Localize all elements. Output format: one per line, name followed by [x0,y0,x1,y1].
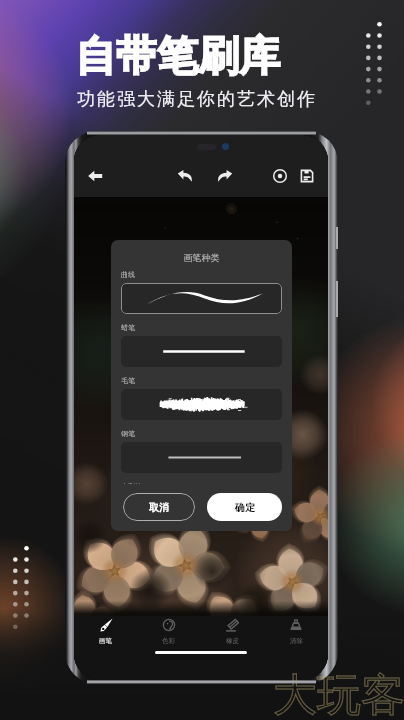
button[interactable]: 色彩 [137,616,200,647]
staticText: 钢笔 [121,429,135,438]
button[interactable]: Redo [213,164,237,188]
staticText: 橡皮 [226,637,239,645]
staticText: 毛笔 [121,376,135,385]
button[interactable] [121,336,282,367]
button[interactable] [121,389,282,420]
button[interactable]: 确定 [207,493,282,521]
button[interactable]: 清除 [264,616,328,647]
staticText: 画笔 [99,637,112,645]
staticText: 自带笔刷库 [75,31,280,83]
staticText: 清除 [290,637,303,645]
staticText: 大玩客 [273,668,404,720]
button[interactable]: Color picker [269,165,291,187]
button[interactable]: Save [296,165,318,187]
staticText: 确定 [235,501,255,514]
button[interactable]: 画笔 [74,616,137,647]
staticText: 蜡笔 [121,323,135,332]
staticText: 色彩 [162,637,175,645]
button[interactable]: Back [83,164,107,188]
button[interactable]: 取消 [123,493,195,521]
button[interactable] [121,283,282,314]
staticText: 取消 [149,501,169,514]
button[interactable]: Undo [173,164,197,188]
button[interactable]: 橡皮 [200,616,264,647]
staticText: 水彩笔 [121,482,142,484]
button[interactable] [121,442,282,473]
staticText: 画笔种类 [111,252,292,263]
staticText: 曲线 [121,270,135,279]
staticText: 功能强大满足你的艺术创作 [76,88,316,111]
